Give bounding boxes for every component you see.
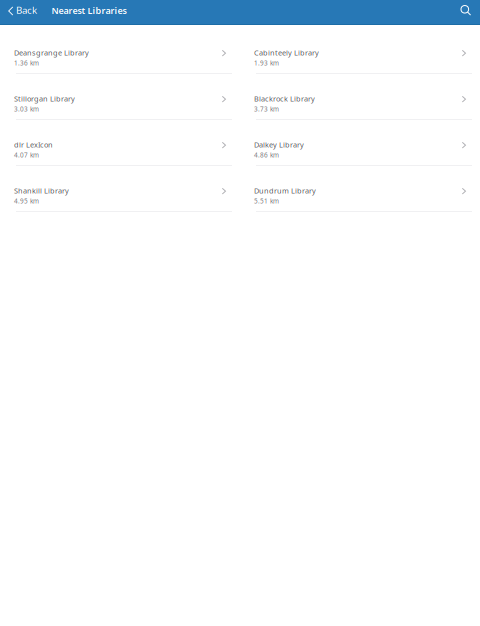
staticText: 1.93 km	[254, 59, 279, 67]
staticText: 5.51 km	[254, 197, 279, 205]
button[interactable]: Cabinteely Library	[240, 28, 480, 74]
button[interactable]: Blackrock Library	[240, 74, 480, 120]
staticText: 4.86 km	[254, 151, 279, 159]
staticText: Shankill Library	[14, 186, 69, 196]
staticText: Blackrock Library	[254, 94, 315, 104]
staticText: Back	[16, 3, 37, 17]
button[interactable]: Deansgrange Library	[0, 28, 240, 74]
staticText: Dundrum Library	[254, 186, 316, 196]
button[interactable]: Search	[452, 0, 480, 24]
staticText: Cabinteely Library	[254, 48, 319, 58]
button[interactable]: Dundrum Library	[240, 166, 480, 212]
staticText: 4.07 km	[14, 151, 39, 159]
staticText: 4.95 km	[14, 197, 39, 205]
staticText: dlr LexIcon	[14, 140, 53, 150]
staticText: 3.03 km	[14, 105, 39, 113]
staticText: Nearest Libraries	[52, 4, 127, 17]
staticText: Dalkey Library	[254, 140, 304, 150]
button[interactable]: Shankill Library	[0, 166, 240, 212]
button[interactable]: Stillorgan Library	[0, 74, 240, 120]
button[interactable]: dlr LexIcon	[0, 120, 240, 166]
button[interactable]: Dalkey Library	[240, 120, 480, 166]
staticText: Deansgrange Library	[14, 48, 89, 58]
staticText: 3.73 km	[254, 105, 279, 113]
staticText: Stillorgan Library	[14, 94, 75, 104]
button[interactable]: Back	[0, 0, 42, 24]
staticText: 1.36 km	[14, 59, 39, 67]
